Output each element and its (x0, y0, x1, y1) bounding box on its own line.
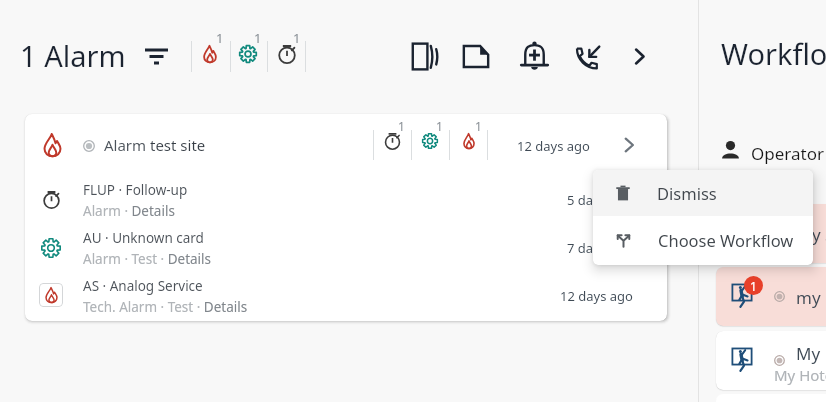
staticText: 1 (475, 118, 482, 134)
button[interactable]: AU · Unknown card (25, 223, 667, 271)
staticText: Alarm · Details (83, 202, 483, 220)
staticText: 12 days ago (560, 287, 633, 305)
staticText: My Hotel Workflow (796, 342, 826, 365)
staticText: my Service Workflow (796, 223, 826, 246)
button[interactable]: Filter by category (270, 27, 306, 77)
staticText: 7 days ago (567, 239, 633, 257)
button[interactable]: Filter by category (231, 27, 267, 77)
staticText: Tech. Alarm · Test · Details (83, 298, 483, 316)
staticText: Dismiss (657, 182, 813, 204)
staticText: 1 (436, 118, 443, 134)
staticText: My Hotel, Reception (774, 365, 826, 385)
staticText: 1 (293, 29, 301, 47)
staticText: 1 (254, 29, 262, 47)
button[interactable]: FLUP · Follow-up (25, 175, 667, 223)
staticText: 1 (398, 118, 405, 134)
button[interactable]: More (624, 40, 655, 73)
staticText: FLUP · Follow-up (83, 181, 483, 199)
button[interactable]: Category (453, 119, 485, 161)
staticText: AS · Analog Service (83, 277, 483, 295)
button[interactable]: My Hotel Workflow (716, 331, 826, 390)
button[interactable]: Filter by category (193, 27, 229, 77)
staticText: 1 Alarm (20, 36, 126, 75)
staticText: Operator (751, 142, 826, 165)
button[interactable]: Add alarm (518, 39, 551, 74)
button[interactable]: Operator (717, 136, 745, 164)
staticText: 1 (750, 278, 757, 294)
staticText: 12 days ago (517, 137, 590, 155)
staticText: 5 days ago (567, 191, 633, 209)
staticText: 1 (216, 29, 224, 47)
button[interactable]: my repair workflow (716, 267, 826, 326)
button[interactable]: Category (376, 119, 408, 161)
button[interactable]: Open alarm (614, 130, 644, 160)
staticText: Alarm · Test · Details (83, 250, 483, 268)
staticText: Alarm test site (104, 135, 206, 155)
button[interactable]: Category (414, 119, 446, 161)
button[interactable]: 1 Alarm (16, 33, 130, 77)
button[interactable]: Dismiss (593, 170, 813, 216)
button[interactable]: Card reader (407, 40, 441, 73)
staticText: Choose Workflow (658, 229, 813, 251)
staticText: Workflow (721, 34, 826, 73)
button[interactable]: Alarm test site (25, 114, 667, 176)
button[interactable]: Filter (140, 40, 173, 73)
button[interactable]: my Service Workflow (716, 204, 826, 263)
button[interactable]: Choose Workflow (593, 216, 813, 265)
button[interactable]: AS · Analog Service (25, 271, 667, 319)
staticText: my repair workflow (796, 286, 826, 309)
button[interactable]: Incoming call (572, 40, 603, 73)
staticText: AU · Unknown card (83, 229, 483, 247)
button[interactable]: Note (460, 40, 492, 73)
